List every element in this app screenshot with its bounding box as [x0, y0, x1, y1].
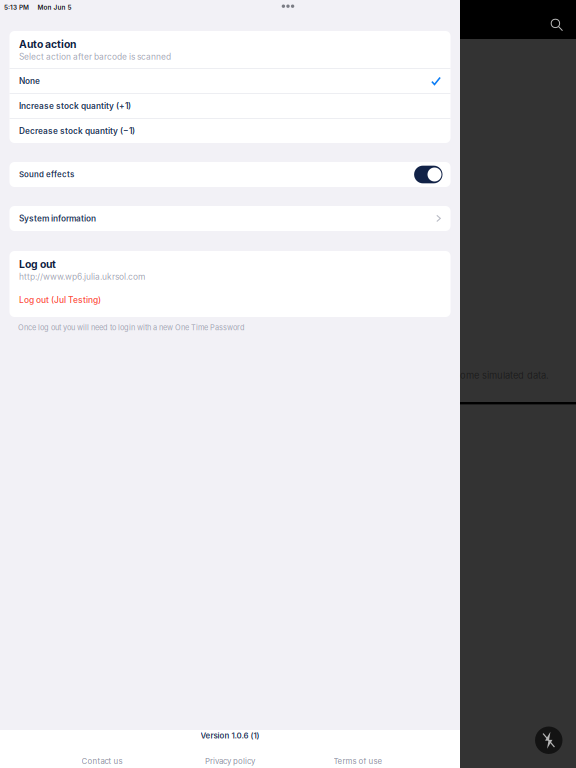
staticText: 5:13 PM — [4, 4, 29, 11]
staticText: Terms of use — [333, 756, 382, 766]
button[interactable]: Terms of use — [294, 756, 422, 766]
staticText: http://www.wp6.julia.ukrsol.com — [19, 272, 145, 282]
staticText: Contact us — [81, 756, 122, 766]
staticText: Increase stock quantity (+1) — [19, 101, 131, 111]
button[interactable]: Privacy policy — [166, 756, 294, 766]
button[interactable]: Increase stock quantity (+1) — [9, 94, 450, 118]
button[interactable]: Sound effects — [414, 166, 442, 183]
button[interactable]: Contact us — [38, 756, 166, 766]
button[interactable]: Decrease stock quantity (−1) — [9, 119, 450, 143]
staticText: None — [19, 76, 40, 86]
button[interactable]: Search — [550, 18, 563, 31]
staticText: Version 1.0.6 (1) — [200, 731, 259, 740]
button[interactable]: Flash off — [535, 726, 562, 754]
button[interactable]: System information — [9, 206, 450, 231]
staticText: Auto action — [19, 38, 76, 51]
staticText: System information — [19, 213, 96, 223]
staticText: Mon Jun 5 — [37, 4, 71, 11]
staticText: Privacy policy — [205, 756, 255, 766]
staticText: Log out (Jul Testing) — [19, 295, 101, 305]
staticText: Once log out you will need to login with… — [18, 323, 245, 332]
staticText: ome simulated data. — [460, 370, 549, 381]
staticText: Sound effects — [19, 170, 74, 179]
staticText: Select action after barcode is scanned — [19, 52, 171, 62]
staticText: Decrease stock quantity (−1) — [19, 126, 135, 136]
button[interactable]: None — [9, 69, 450, 93]
staticText: Log out — [19, 258, 56, 271]
button[interactable]: Log out (Jul Testing) — [19, 282, 101, 305]
